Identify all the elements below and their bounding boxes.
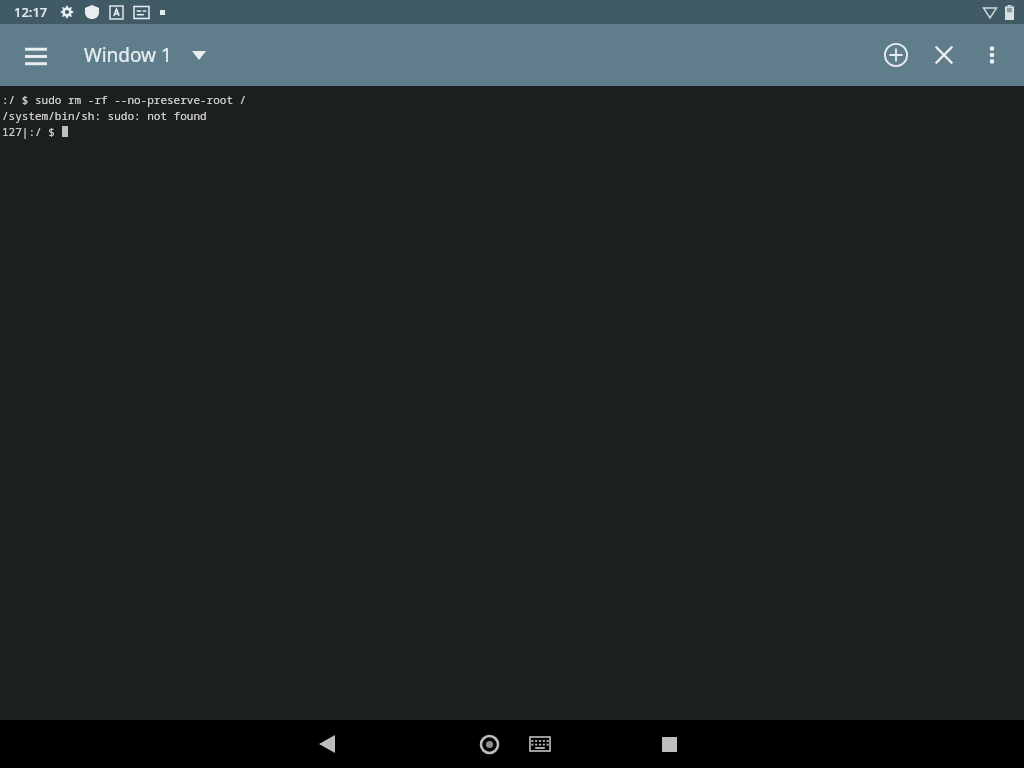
staticText: :/ $ sudo rm -rf --no-preserve-root / [2, 92, 247, 107]
button[interactable]: Close session [920, 31, 968, 79]
button[interactable]: More options [968, 31, 1016, 79]
button[interactable]: Recent apps [642, 720, 696, 768]
staticText: /system/bin/sh: sudo: not found [2, 108, 207, 123]
staticText: Window 1 [84, 42, 172, 68]
button[interactable]: New session [872, 31, 920, 79]
button[interactable]: Show keyboard [516, 720, 564, 768]
staticText: 127|:/ $ [2, 124, 62, 139]
button[interactable]: Back [300, 720, 354, 768]
button[interactable]: :/ $ sudo rm -rf --no-preserve-root / [0, 86, 1024, 720]
button[interactable]: Window 1 [80, 36, 210, 74]
staticText: 12:17 [14, 3, 48, 21]
button[interactable]: Open navigation drawer [14, 33, 58, 77]
button[interactable]: Home [462, 720, 516, 768]
